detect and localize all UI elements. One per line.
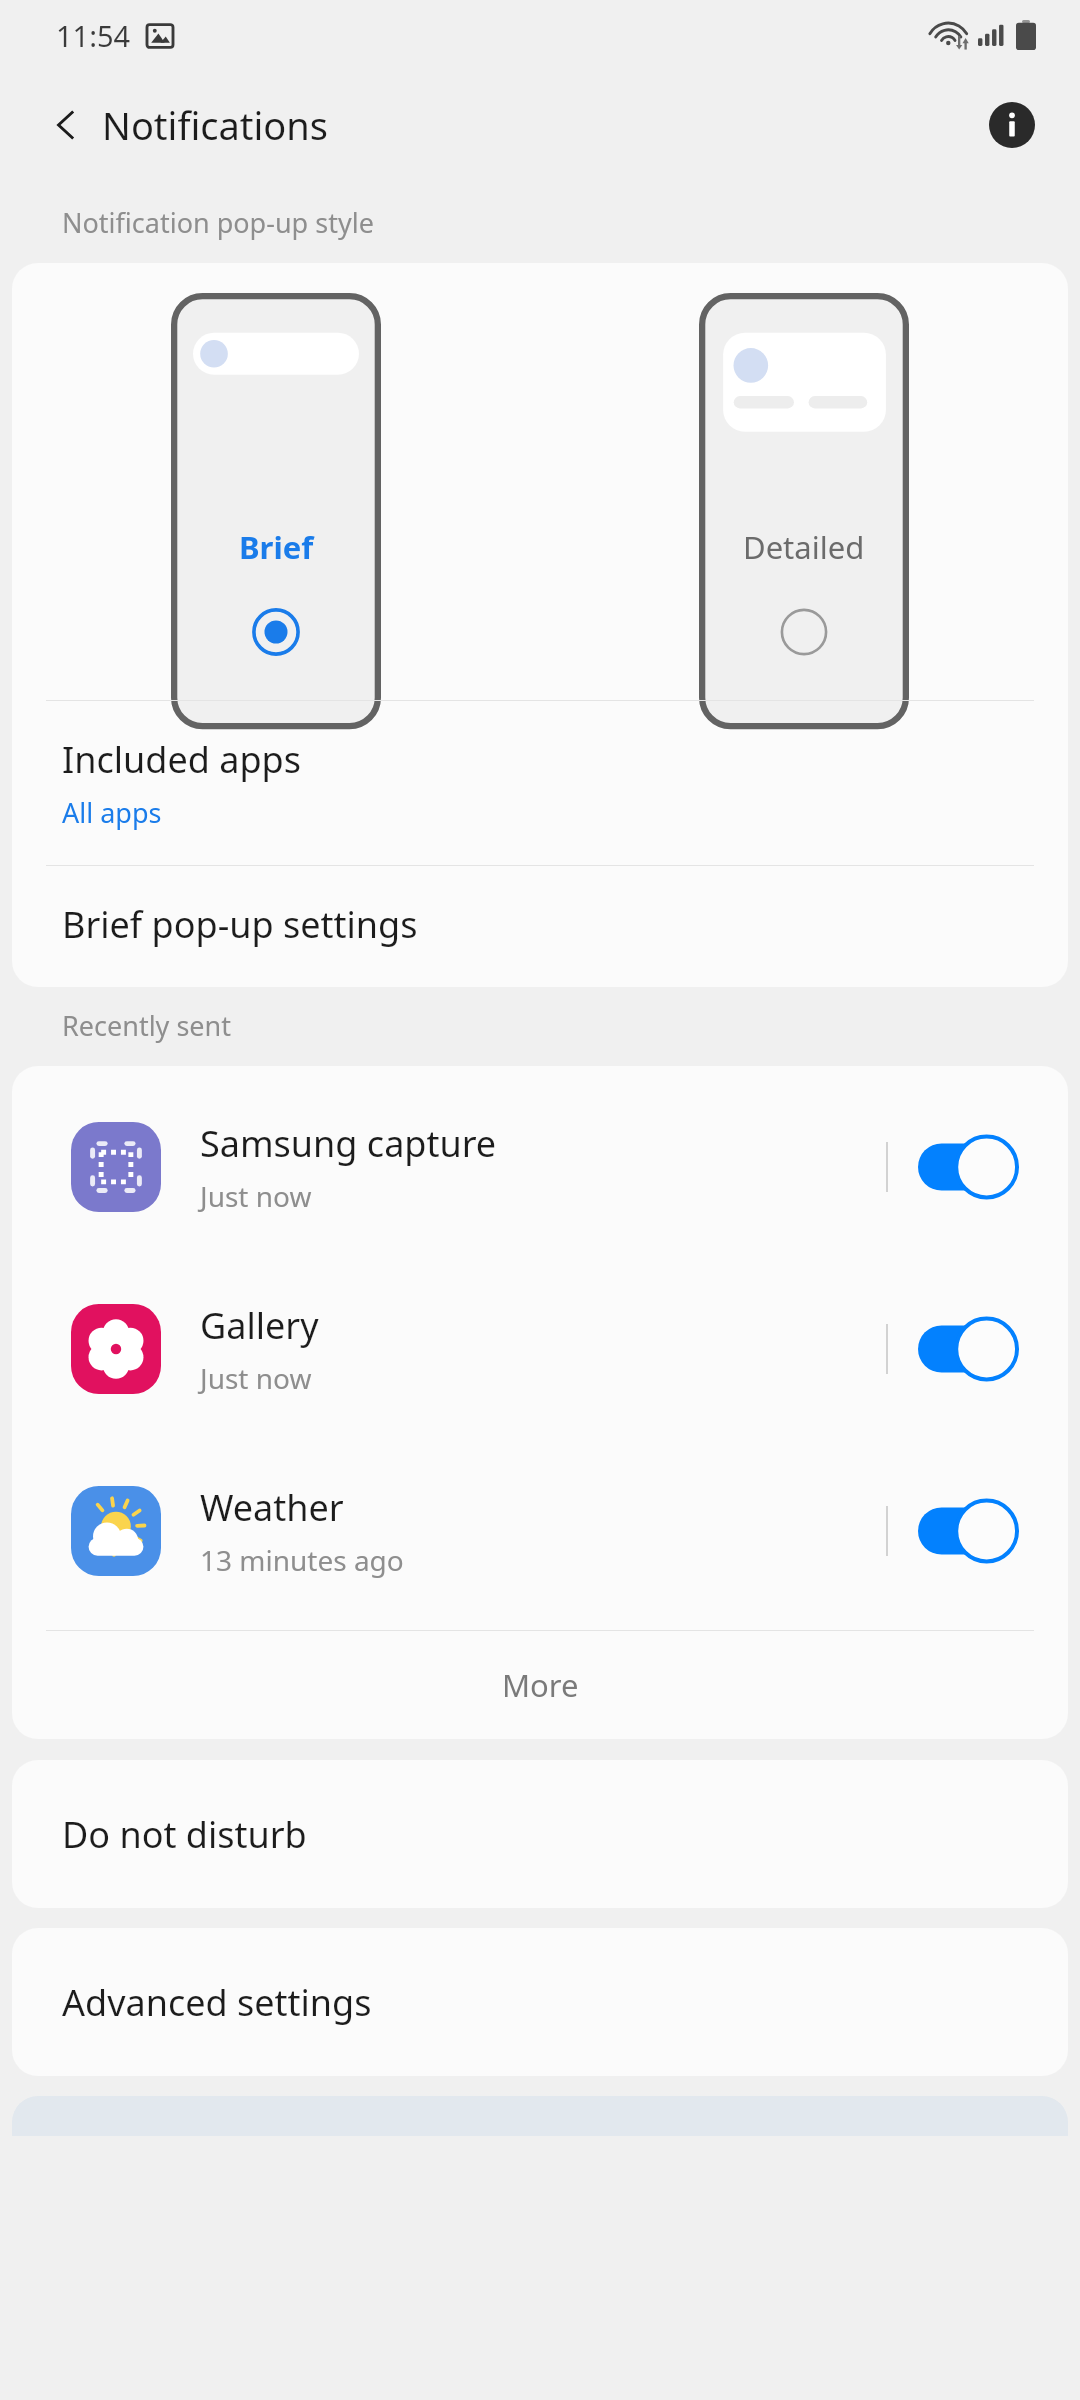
staticText: Gallery bbox=[200, 1301, 319, 1350]
staticText: Notification pop-up style bbox=[62, 204, 374, 241]
button[interactable]: More bbox=[12, 1631, 1068, 1739]
button[interactable]: Weather notifications toggle bbox=[918, 1493, 1028, 1569]
button[interactable]: Do not disturb bbox=[12, 1760, 1068, 1908]
button[interactable]: Detailed pop-up style bbox=[764, 592, 844, 672]
button[interactable]: Back bbox=[36, 95, 96, 155]
staticText: Included apps bbox=[62, 735, 301, 784]
staticText: All apps bbox=[62, 794, 162, 831]
button[interactable]: Samsung capture notifications toggle bbox=[918, 1129, 1028, 1205]
staticText: Just now bbox=[200, 1177, 312, 1215]
button[interactable]: Samsung capture bbox=[12, 1076, 1068, 1258]
staticText: Notifications bbox=[102, 99, 329, 151]
staticText: More bbox=[502, 1664, 579, 1706]
staticText: Just now bbox=[200, 1359, 312, 1397]
button[interactable]: Gallery notifications toggle bbox=[918, 1311, 1028, 1387]
button[interactable]: Included apps bbox=[12, 701, 1068, 865]
button[interactable]: Brief pop-up settings bbox=[12, 866, 1068, 983]
button[interactable]: Information bbox=[974, 87, 1050, 163]
button[interactable]: Advanced settings bbox=[12, 1928, 1068, 2076]
staticText: Do not disturb bbox=[62, 1810, 307, 1859]
staticText: 11:54 bbox=[56, 16, 131, 55]
staticText: Recently sent bbox=[62, 1007, 231, 1044]
staticText: Brief pop-up settings bbox=[62, 900, 418, 949]
button[interactable]: Gallery bbox=[12, 1258, 1068, 1440]
staticText: 13 minutes ago bbox=[200, 1541, 404, 1579]
staticText: Advanced settings bbox=[62, 1978, 372, 2027]
staticText: Brief bbox=[239, 526, 314, 568]
button[interactable]: Brief pop-up style bbox=[236, 592, 316, 672]
staticText: Samsung capture bbox=[200, 1119, 497, 1168]
button[interactable]: Weather bbox=[12, 1440, 1068, 1622]
staticText: Detailed bbox=[743, 526, 865, 568]
staticText: Weather bbox=[200, 1483, 344, 1532]
